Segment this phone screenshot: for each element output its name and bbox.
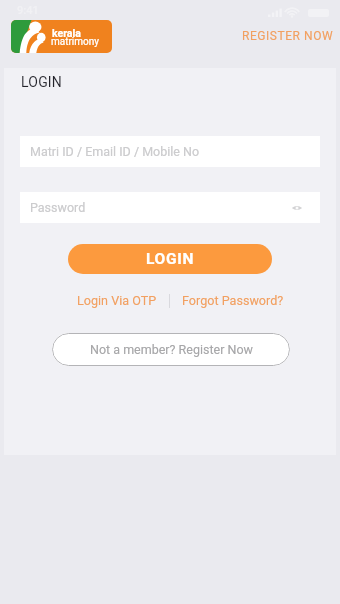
button[interactable]: Kerala Matrimony [11,20,112,53]
button[interactable]: Matri ID / Email ID / Mobile No [20,136,320,167]
staticText: Not a member? Register Now [90,342,253,357]
button[interactable]: Not a member? Register Now [52,333,290,366]
staticText: kerala [52,27,81,39]
staticText: Forgot Password? [182,293,284,308]
staticText: REGISTER NOW [242,29,334,43]
button[interactable]: Login Via OTP [73,290,161,311]
staticText: matrimony [51,36,100,48]
staticText: Password [30,200,86,215]
staticText: Login Via OTP [77,293,157,308]
button[interactable]: Password [20,192,320,223]
staticText: LOGIN [146,250,195,268]
button[interactable]: Forgot Password? [178,290,288,311]
staticText: Matri ID / Email ID / Mobile No [30,144,200,159]
button[interactable]: LOGIN [68,244,272,274]
button[interactable]: REGISTER NOW [236,24,340,48]
button[interactable]: Show password [289,200,305,216]
staticText: LOGIN [21,74,63,90]
